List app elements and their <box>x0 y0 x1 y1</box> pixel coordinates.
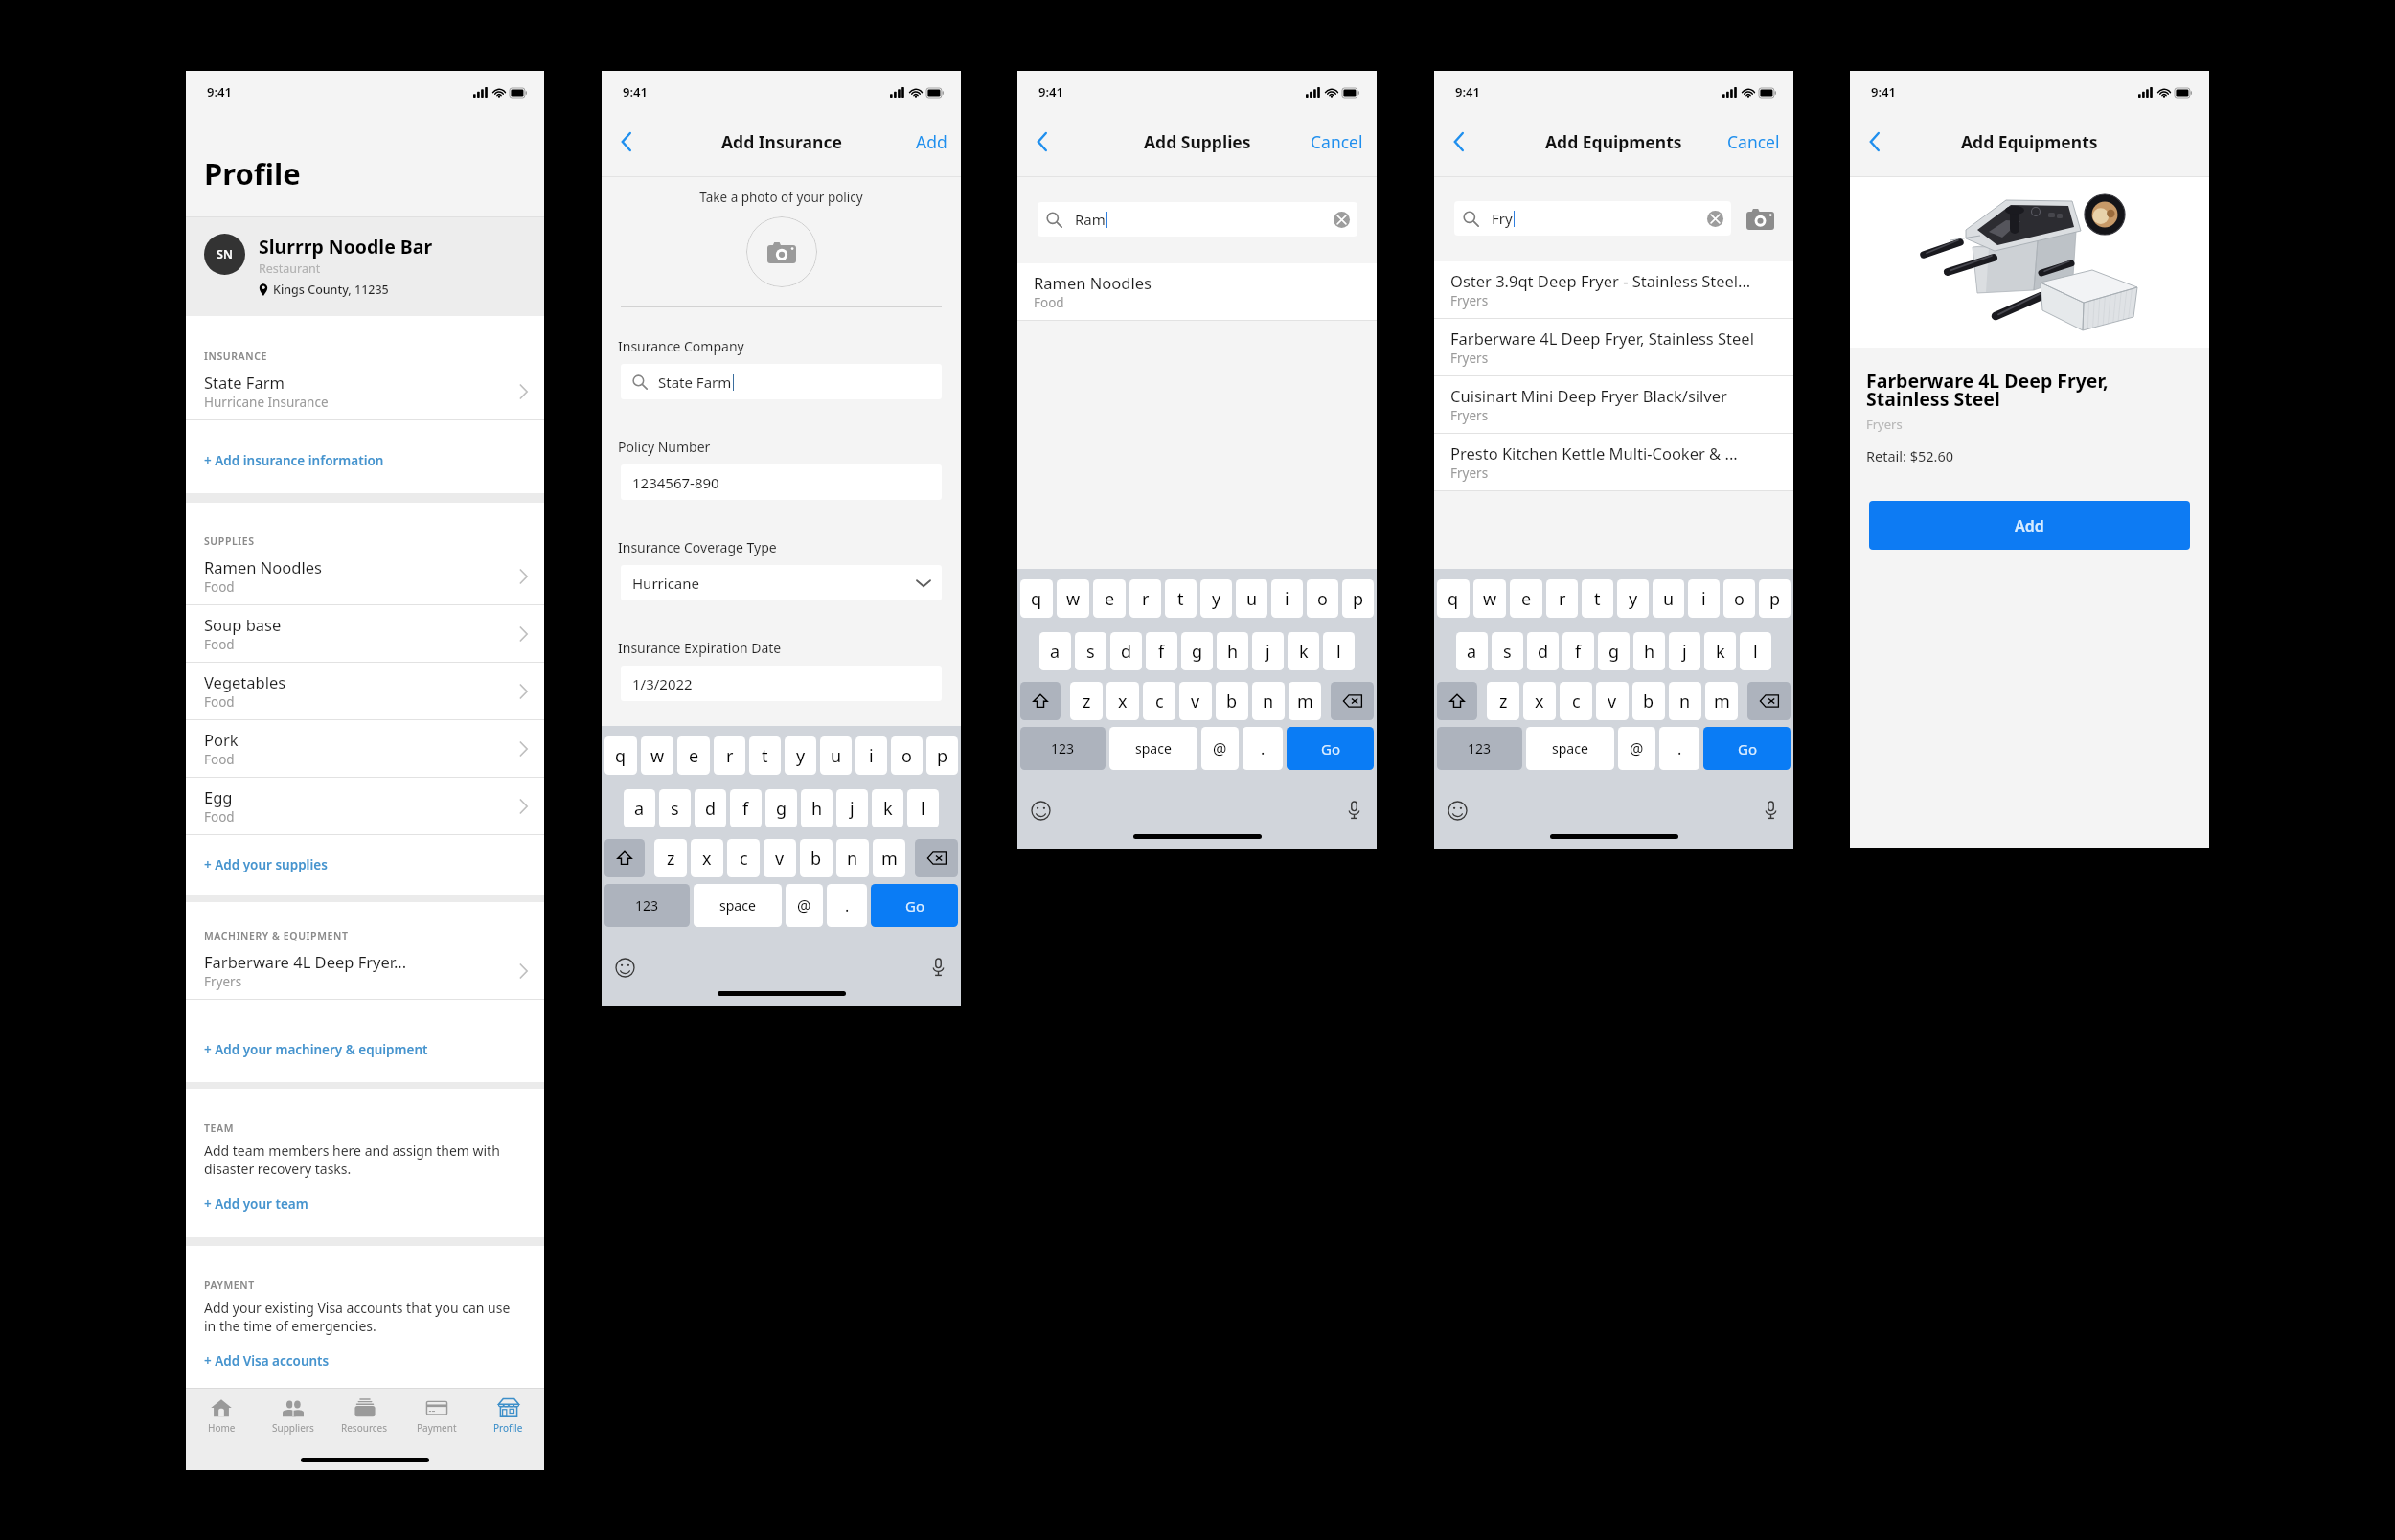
button[interactable]: q <box>1020 579 1053 618</box>
button[interactable]: Go <box>1703 727 1791 770</box>
button[interactable]: p <box>926 736 958 775</box>
button[interactable]: Add <box>1869 501 2190 550</box>
button[interactable]: + Add Visa accounts <box>186 1335 544 1388</box>
button[interactable]: v <box>1596 682 1629 720</box>
button[interactable]: w <box>1057 579 1089 618</box>
button[interactable]: Dictate <box>1758 798 1783 823</box>
button[interactable]: . <box>1243 727 1283 770</box>
button[interactable]: 123 <box>1437 727 1522 770</box>
button[interactable]: Pork <box>186 720 544 778</box>
button[interactable]: Farberware 4L Deep Fryer... <box>186 942 544 1000</box>
button[interactable]: t <box>749 736 781 775</box>
button[interactable]: h <box>1217 632 1248 670</box>
button[interactable]: o <box>891 736 923 775</box>
button[interactable]: l <box>907 789 939 827</box>
button[interactable]: Emoji <box>1028 798 1053 823</box>
button[interactable]: m <box>1289 682 1321 720</box>
button[interactable]: z <box>1487 682 1519 720</box>
button[interactable]: k <box>872 789 903 827</box>
button[interactable]: 123 <box>604 884 690 927</box>
button[interactable]: Shift <box>1437 682 1477 720</box>
button[interactable]: y <box>1617 579 1649 618</box>
button[interactable]: m <box>1705 682 1738 720</box>
button[interactable]: Emoji <box>612 955 637 980</box>
button[interactable]: b <box>1632 682 1665 720</box>
button[interactable]: j <box>1669 632 1700 670</box>
button[interactable]: n <box>836 839 869 877</box>
button[interactable]: i <box>1688 579 1720 618</box>
button[interactable]: Cancel <box>1297 125 1377 159</box>
button[interactable]: Backspace <box>1747 682 1791 720</box>
button[interactable]: r <box>1129 579 1161 618</box>
button[interactable]: a <box>624 789 655 827</box>
button[interactable]: Go <box>1287 727 1374 770</box>
button[interactable]: Go <box>871 884 958 927</box>
button[interactable]: Clear <box>1333 211 1350 228</box>
button[interactable]: s <box>659 789 691 827</box>
button[interactable]: Soup base <box>186 605 544 663</box>
button[interactable]: Cuisinart Mini Deep Fryer Black/silver <box>1434 376 1793 434</box>
button[interactable]: Presto Kitchen Kettle Multi-Cooker & ... <box>1434 434 1793 491</box>
button[interactable]: g <box>765 789 797 827</box>
button[interactable]: space <box>694 884 782 927</box>
button[interactable]: Back <box>1860 127 1889 156</box>
button[interactable]: w <box>641 736 673 775</box>
button[interactable]: space <box>1109 727 1197 770</box>
button[interactable]: Dictate <box>1341 798 1366 823</box>
button[interactable]: + Add your supplies <box>186 835 544 895</box>
button[interactable]: Ramen Noodles <box>186 548 544 605</box>
button[interactable]: v <box>1179 682 1212 720</box>
button[interactable]: Backspace <box>1331 682 1374 720</box>
button[interactable]: 123 <box>1020 727 1106 770</box>
button[interactable]: n <box>1252 682 1285 720</box>
button[interactable]: Shift <box>604 839 645 877</box>
button[interactable]: Fry <box>1454 201 1731 236</box>
button[interactable]: Shift <box>1020 682 1061 720</box>
button[interactable]: e <box>1093 579 1126 618</box>
button[interactable]: Back <box>1445 127 1473 156</box>
button[interactable]: Egg <box>186 778 544 835</box>
button[interactable]: Backspace <box>915 839 958 877</box>
button[interactable]: . <box>827 884 867 927</box>
button[interactable]: c <box>1143 682 1175 720</box>
button[interactable]: z <box>654 839 687 877</box>
button[interactable]: Emoji <box>1445 798 1470 823</box>
button[interactable]: Home <box>186 1389 257 1449</box>
button[interactable]: a <box>1039 632 1071 670</box>
button[interactable]: v <box>764 839 796 877</box>
button[interactable]: d <box>1527 632 1559 670</box>
button[interactable]: z <box>1070 682 1103 720</box>
button[interactable]: p <box>1759 579 1791 618</box>
button[interactable]: Cancel <box>1714 125 1793 159</box>
button[interactable]: o <box>1723 579 1755 618</box>
button[interactable]: o <box>1307 579 1338 618</box>
button[interactable]: h <box>1633 632 1665 670</box>
button[interactable]: k <box>1288 632 1319 670</box>
button[interactable]: j <box>836 789 868 827</box>
button[interactable]: 1234567-890 <box>621 464 942 500</box>
button[interactable]: @ <box>1618 727 1655 770</box>
button[interactable]: i <box>1271 579 1303 618</box>
button[interactable]: Clear <box>1706 210 1723 227</box>
button[interactable]: k <box>1704 632 1736 670</box>
button[interactable]: Oster 3.9qt Deep Fryer - Stainless Steel… <box>1434 261 1793 319</box>
button[interactable]: f <box>1562 632 1594 670</box>
button[interactable]: y <box>1200 579 1232 618</box>
button[interactable]: q <box>1437 579 1470 618</box>
button[interactable]: g <box>1181 632 1213 670</box>
button[interactable]: e <box>677 736 710 775</box>
button[interactable]: SN <box>186 217 544 316</box>
button[interactable]: d <box>1110 632 1142 670</box>
button[interactable]: Vegetables <box>186 663 544 720</box>
button[interactable]: Back <box>1028 127 1057 156</box>
button[interactable]: Dictate <box>925 955 950 980</box>
button[interactable]: + Add your team <box>186 1178 544 1237</box>
button[interactable]: g <box>1598 632 1630 670</box>
button[interactable]: Ramen Noodles <box>1017 263 1377 321</box>
button[interactable]: c <box>1560 682 1592 720</box>
button[interactable]: p <box>1342 579 1374 618</box>
button[interactable]: u <box>1653 579 1684 618</box>
button[interactable]: Payment <box>400 1389 472 1449</box>
button[interactable]: Resources <box>329 1389 400 1449</box>
button[interactable]: s <box>1075 632 1106 670</box>
